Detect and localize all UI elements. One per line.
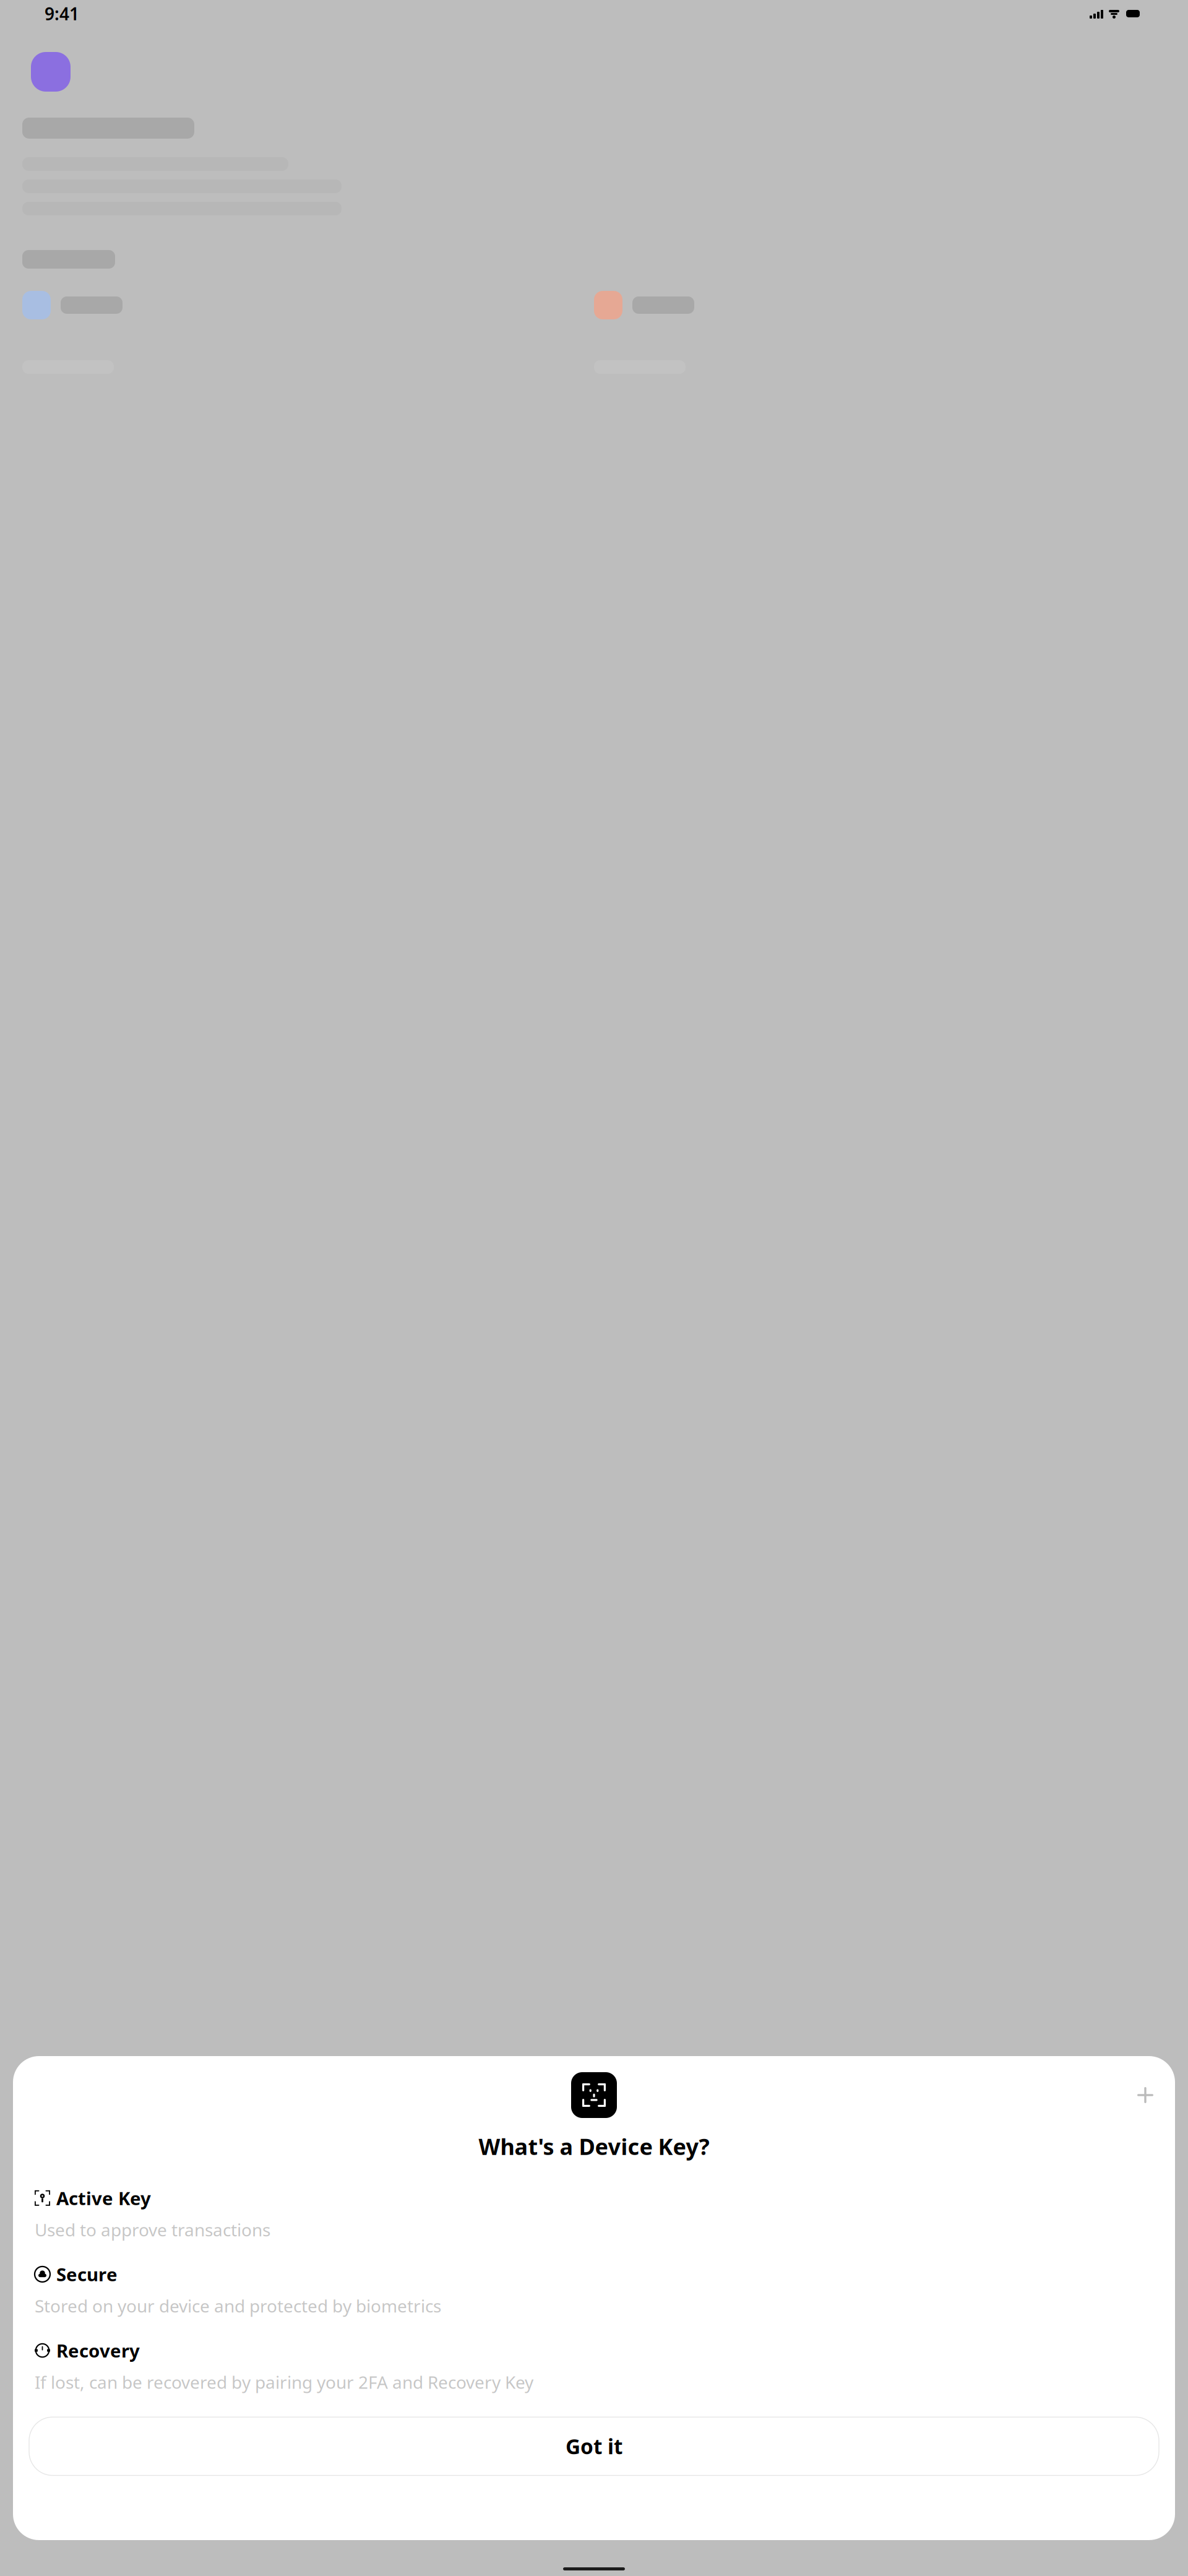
staticText: Active Key [56,2186,151,2210]
staticText: Got it [566,2433,622,2460]
staticText: If lost, can be recovered by pairing you… [35,2371,533,2394]
staticText: 9:41 [45,2,79,25]
staticText: Used to approve transactions [35,2218,270,2241]
staticText: Stored on your device and protected by b… [35,2294,441,2317]
staticText: Secure [56,2262,118,2286]
staticText: What's a Device Key? [479,2132,709,2161]
staticText: Recovery [56,2338,140,2363]
button[interactable]: Got it [29,2417,1159,2475]
button[interactable]: Close [1132,2081,1159,2109]
